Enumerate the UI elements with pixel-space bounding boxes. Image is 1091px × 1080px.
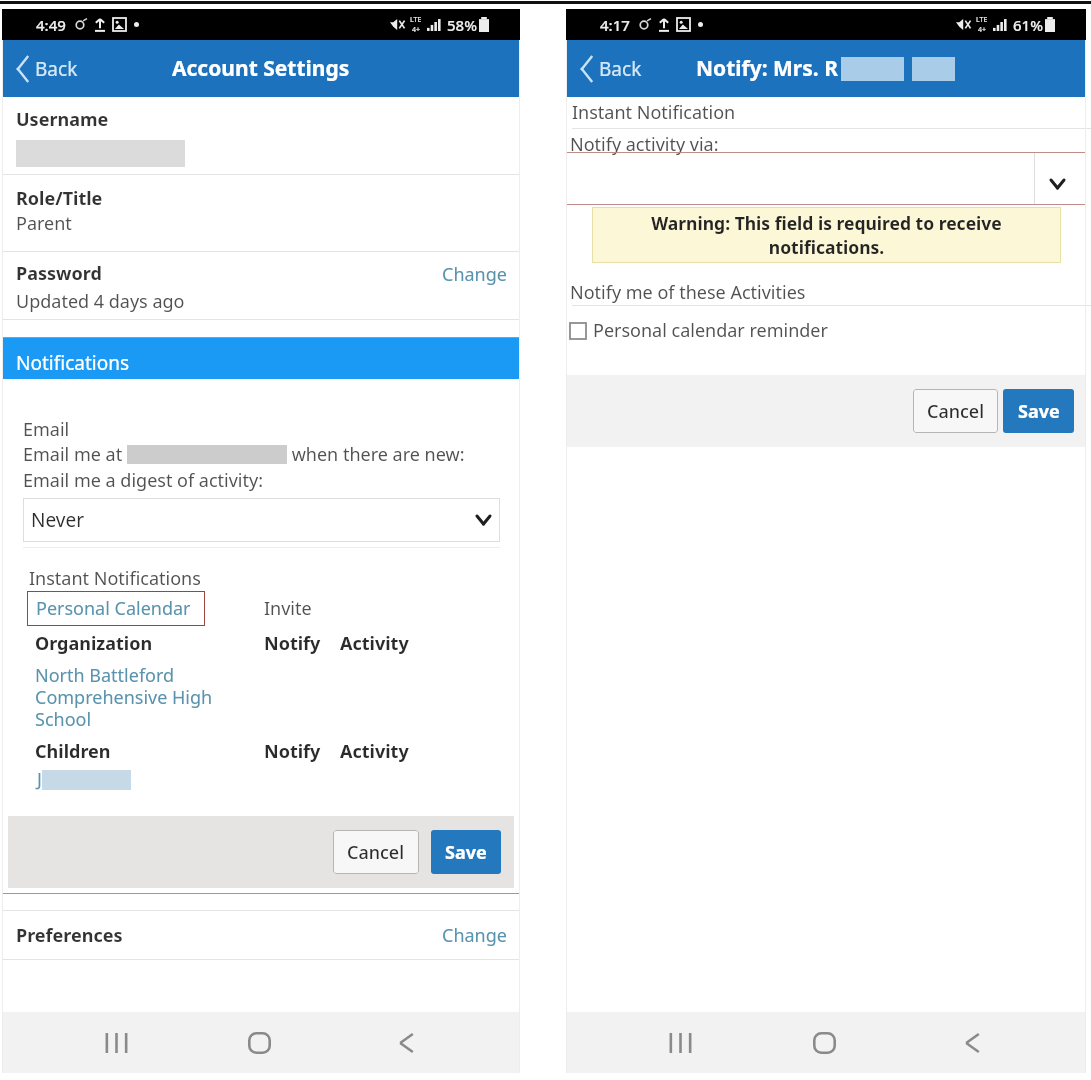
staticText: Account Settings xyxy=(172,54,350,83)
staticText: Notify activity via: xyxy=(570,132,719,157)
staticText: LTE xyxy=(410,15,422,25)
staticText: Back xyxy=(599,56,642,82)
button[interactable]: Back xyxy=(372,1012,440,1073)
staticText: Email xyxy=(23,417,70,442)
staticText: 4:17 xyxy=(600,15,630,35)
button[interactable]: Password xyxy=(2,252,520,319)
button[interactable]: Notifications xyxy=(2,337,520,379)
staticText: Warning: This field is required to recei… xyxy=(606,211,1047,259)
staticText: Role/Title xyxy=(16,186,103,211)
staticText: Updated 4 days ago xyxy=(16,289,185,314)
staticText: 4+ xyxy=(978,25,987,35)
staticText: Notify: Mrs. R xyxy=(696,54,838,83)
staticText: 4:49 xyxy=(36,15,66,35)
staticText: North Battleford Comprehensive High Scho… xyxy=(35,663,213,732)
button[interactable]: Personal calendar reminder xyxy=(570,316,828,345)
staticText: Cancel xyxy=(927,399,985,424)
staticText: Change xyxy=(442,262,507,287)
button[interactable]: Personal Calendar xyxy=(27,591,205,626)
button[interactable] xyxy=(566,152,1086,205)
staticText: Change xyxy=(442,923,507,948)
staticText: when there are new: xyxy=(287,442,465,467)
staticText: Notifications xyxy=(16,350,130,376)
staticText: 58% xyxy=(447,15,477,35)
staticText: Activity xyxy=(340,739,409,764)
button[interactable]: Home xyxy=(225,1012,293,1073)
staticText: LTE xyxy=(976,15,988,25)
staticText: Notify me of these Activities xyxy=(570,280,806,305)
staticText: Back xyxy=(35,56,78,82)
button[interactable]: Role/Title xyxy=(2,175,520,251)
staticText: Save xyxy=(1018,399,1060,424)
button[interactable]: Back xyxy=(14,50,81,88)
staticText: Notify xyxy=(264,739,321,764)
staticText: Never xyxy=(31,507,84,533)
button[interactable]: Save xyxy=(1003,389,1074,433)
button[interactable]: Username xyxy=(2,97,520,174)
staticText: Cancel xyxy=(347,840,405,865)
staticText: Personal Calendar xyxy=(36,596,191,621)
button[interactable]: Save xyxy=(431,830,501,874)
staticText: Username xyxy=(16,107,109,132)
button[interactable]: Cancel xyxy=(913,389,998,433)
staticText: Password xyxy=(16,261,102,286)
button[interactable]: Back xyxy=(578,50,645,88)
staticText: Email me at xyxy=(23,442,127,467)
staticText: Children xyxy=(35,739,111,764)
staticText: 4+ xyxy=(412,25,421,35)
staticText: Activity xyxy=(340,631,409,656)
staticText: Save xyxy=(445,840,487,865)
staticText: 61% xyxy=(1013,15,1043,35)
button[interactable]: Cancel xyxy=(333,830,419,874)
button[interactable]: Recent apps xyxy=(646,1012,714,1073)
button[interactable]: Recent apps xyxy=(82,1012,150,1073)
staticText: Notify xyxy=(264,631,321,656)
staticText: Instant Notifications xyxy=(29,566,201,591)
staticText: Organization xyxy=(35,631,153,656)
staticText: Personal calendar reminder xyxy=(593,318,828,343)
button[interactable]: Preferences xyxy=(2,911,520,959)
button[interactable]: Home xyxy=(790,1012,858,1073)
button[interactable]: Back xyxy=(938,1012,1006,1073)
staticText: Invite xyxy=(264,596,312,621)
staticText: J xyxy=(37,767,42,792)
staticText: Parent xyxy=(16,211,72,236)
staticText: Instant Notification xyxy=(572,100,736,125)
staticText: Email me a digest of activity: xyxy=(23,468,264,493)
staticText: Preferences xyxy=(16,923,442,948)
button[interactable]: Never xyxy=(23,498,500,542)
